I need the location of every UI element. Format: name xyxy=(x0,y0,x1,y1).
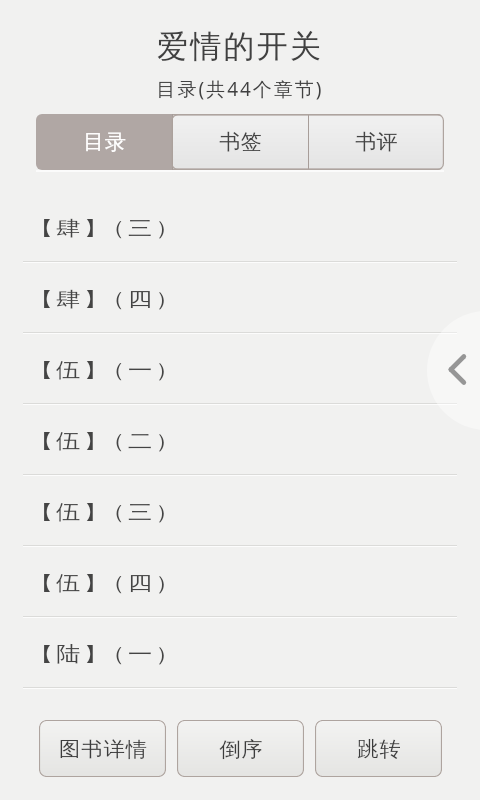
staticText: 【肆】（四） xyxy=(29,287,183,312)
button[interactable]: 【伍】（二） xyxy=(0,404,480,475)
staticText: 倒序 xyxy=(219,737,263,762)
button[interactable]: 【肆】（四） xyxy=(0,262,480,333)
button[interactable]: 【伍】（四） xyxy=(0,546,480,617)
staticText: 图书详情 xyxy=(58,737,147,762)
button[interactable]: 书评 xyxy=(309,114,444,170)
staticText: 书评 xyxy=(355,129,398,155)
staticText: 【伍】（三） xyxy=(29,500,183,525)
button[interactable]: Back xyxy=(427,311,480,430)
button[interactable]: 跳转 xyxy=(315,720,442,777)
staticText: 【伍】（四） xyxy=(29,571,183,596)
button[interactable]: 书签 xyxy=(173,114,308,170)
button[interactable]: 【陆】（一） xyxy=(0,617,480,688)
button[interactable]: 【肆】（三） xyxy=(0,191,480,262)
staticText: 目录(共44个章节) xyxy=(0,76,480,102)
staticText: 跳转 xyxy=(357,737,401,762)
button[interactable]: 【伍】（三） xyxy=(0,475,480,546)
staticText: 【伍】（一） xyxy=(29,358,183,383)
button[interactable]: 倒序 xyxy=(177,720,304,777)
staticText: 目录 xyxy=(83,129,126,155)
staticText: 书签 xyxy=(219,129,262,155)
staticText: 【伍】（二） xyxy=(29,429,183,454)
button[interactable]: 目录 xyxy=(36,114,172,170)
staticText: 【陆】（一） xyxy=(29,642,183,667)
button[interactable]: 图书详情 xyxy=(39,720,166,777)
button[interactable]: 【伍】（一） xyxy=(0,333,480,404)
staticText: 爱情的开关 xyxy=(0,27,480,66)
staticText: 【肆】（三） xyxy=(29,216,183,241)
